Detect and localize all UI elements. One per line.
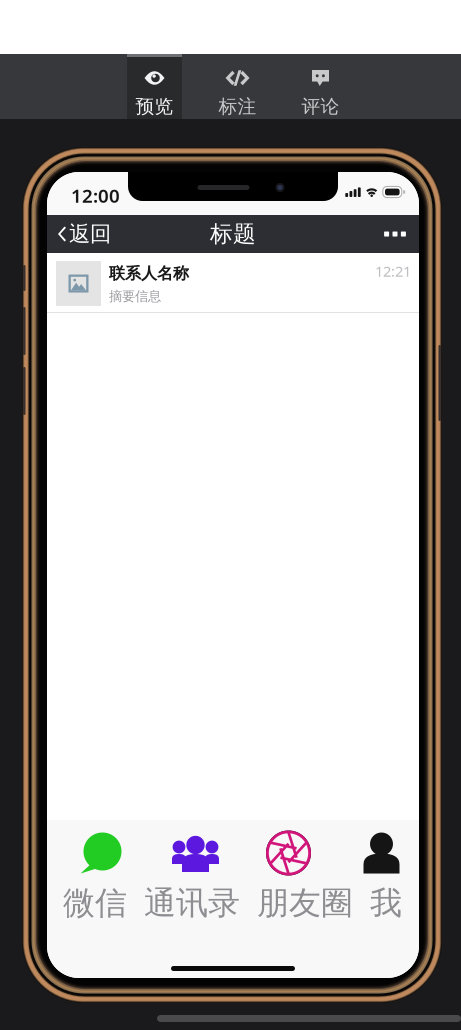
staticText: 12:21 [375,261,411,281]
button[interactable]: 微信 [63,883,127,923]
button[interactable]: 通讯录 [149,825,242,881]
staticText: 我 [370,883,402,923]
button[interactable]: 预览 [127,54,182,119]
staticText: 返回 [69,221,111,247]
button[interactable]: 我 [370,883,402,923]
button[interactable]: 我 [335,825,428,881]
staticText: 12:00 [71,183,120,208]
button[interactable]: 朋友圈 [242,825,335,881]
button[interactable]: 微信 [56,825,149,881]
button[interactable]: 标注 [210,54,265,119]
staticText: 通讯录 [144,883,240,923]
staticText: 评论 [301,95,339,118]
staticText: 微信 [63,883,127,923]
button[interactable]: More [371,215,419,253]
staticText: 摘要信息 [109,288,161,304]
button[interactable]: 返回 [47,215,121,253]
staticText: 朋友圈 [257,883,353,923]
staticText: 标题 [210,220,256,248]
button[interactable]: 评论 [293,54,348,119]
button[interactable]: 通讯录 [144,883,240,923]
staticText: 预览 [135,95,173,118]
button[interactable]: 朋友圈 [257,883,353,923]
staticText: 联系人名称 [109,263,189,283]
button[interactable]: 联系人名称 [47,253,419,313]
staticText: 标注 [218,95,256,118]
